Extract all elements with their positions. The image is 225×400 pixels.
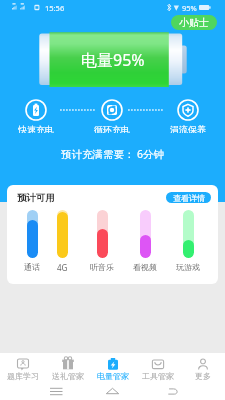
staticText: 送礼管家 <box>52 371 84 381</box>
button[interactable]: 涓流保养 <box>163 99 213 133</box>
staticText: 小贴士 <box>179 16 209 29</box>
button[interactable]: Home <box>84 381 140 400</box>
staticText: 工具管家 <box>142 371 174 381</box>
staticText: 15:56 <box>45 3 65 13</box>
staticText: 玩游戏 <box>176 262 200 272</box>
staticText: 预计充满需要： 6分钟 <box>0 147 225 161</box>
staticText: 查看详情 <box>173 193 205 203</box>
staticText: 预计可用 <box>17 192 55 204</box>
staticText: 更多 <box>195 371 211 381</box>
staticText: 题库学习 <box>7 371 39 381</box>
staticText: 95% <box>182 3 197 13</box>
button[interactable]: Back <box>140 381 225 400</box>
button[interactable]: 电量管家 <box>90 353 135 381</box>
button[interactable]: 送礼管家 <box>45 353 90 381</box>
staticText: 听音乐 <box>90 262 114 272</box>
staticText: 涓流保养 <box>170 124 206 133</box>
staticText: 看视频 <box>133 262 157 272</box>
button[interactable]: 查看详情 <box>166 192 211 203</box>
staticText: 4G <box>57 262 68 273</box>
button[interactable]: Recent apps <box>0 381 84 400</box>
staticText: 循环充电 <box>94 124 130 133</box>
button[interactable]: 工具管家 <box>135 353 180 381</box>
button[interactable]: 题库学习 <box>0 353 45 381</box>
staticText: 电量95% <box>81 49 145 71</box>
button[interactable]: 循环充电 <box>87 99 137 133</box>
button[interactable]: 更多 <box>180 353 225 381</box>
staticText: 快速充电 <box>18 124 54 133</box>
button[interactable]: 快速充电 <box>11 99 61 133</box>
staticText: 电量管家 <box>97 371 129 381</box>
button[interactable]: 小贴士 <box>171 15 217 30</box>
staticText: 通话 <box>24 262 40 272</box>
